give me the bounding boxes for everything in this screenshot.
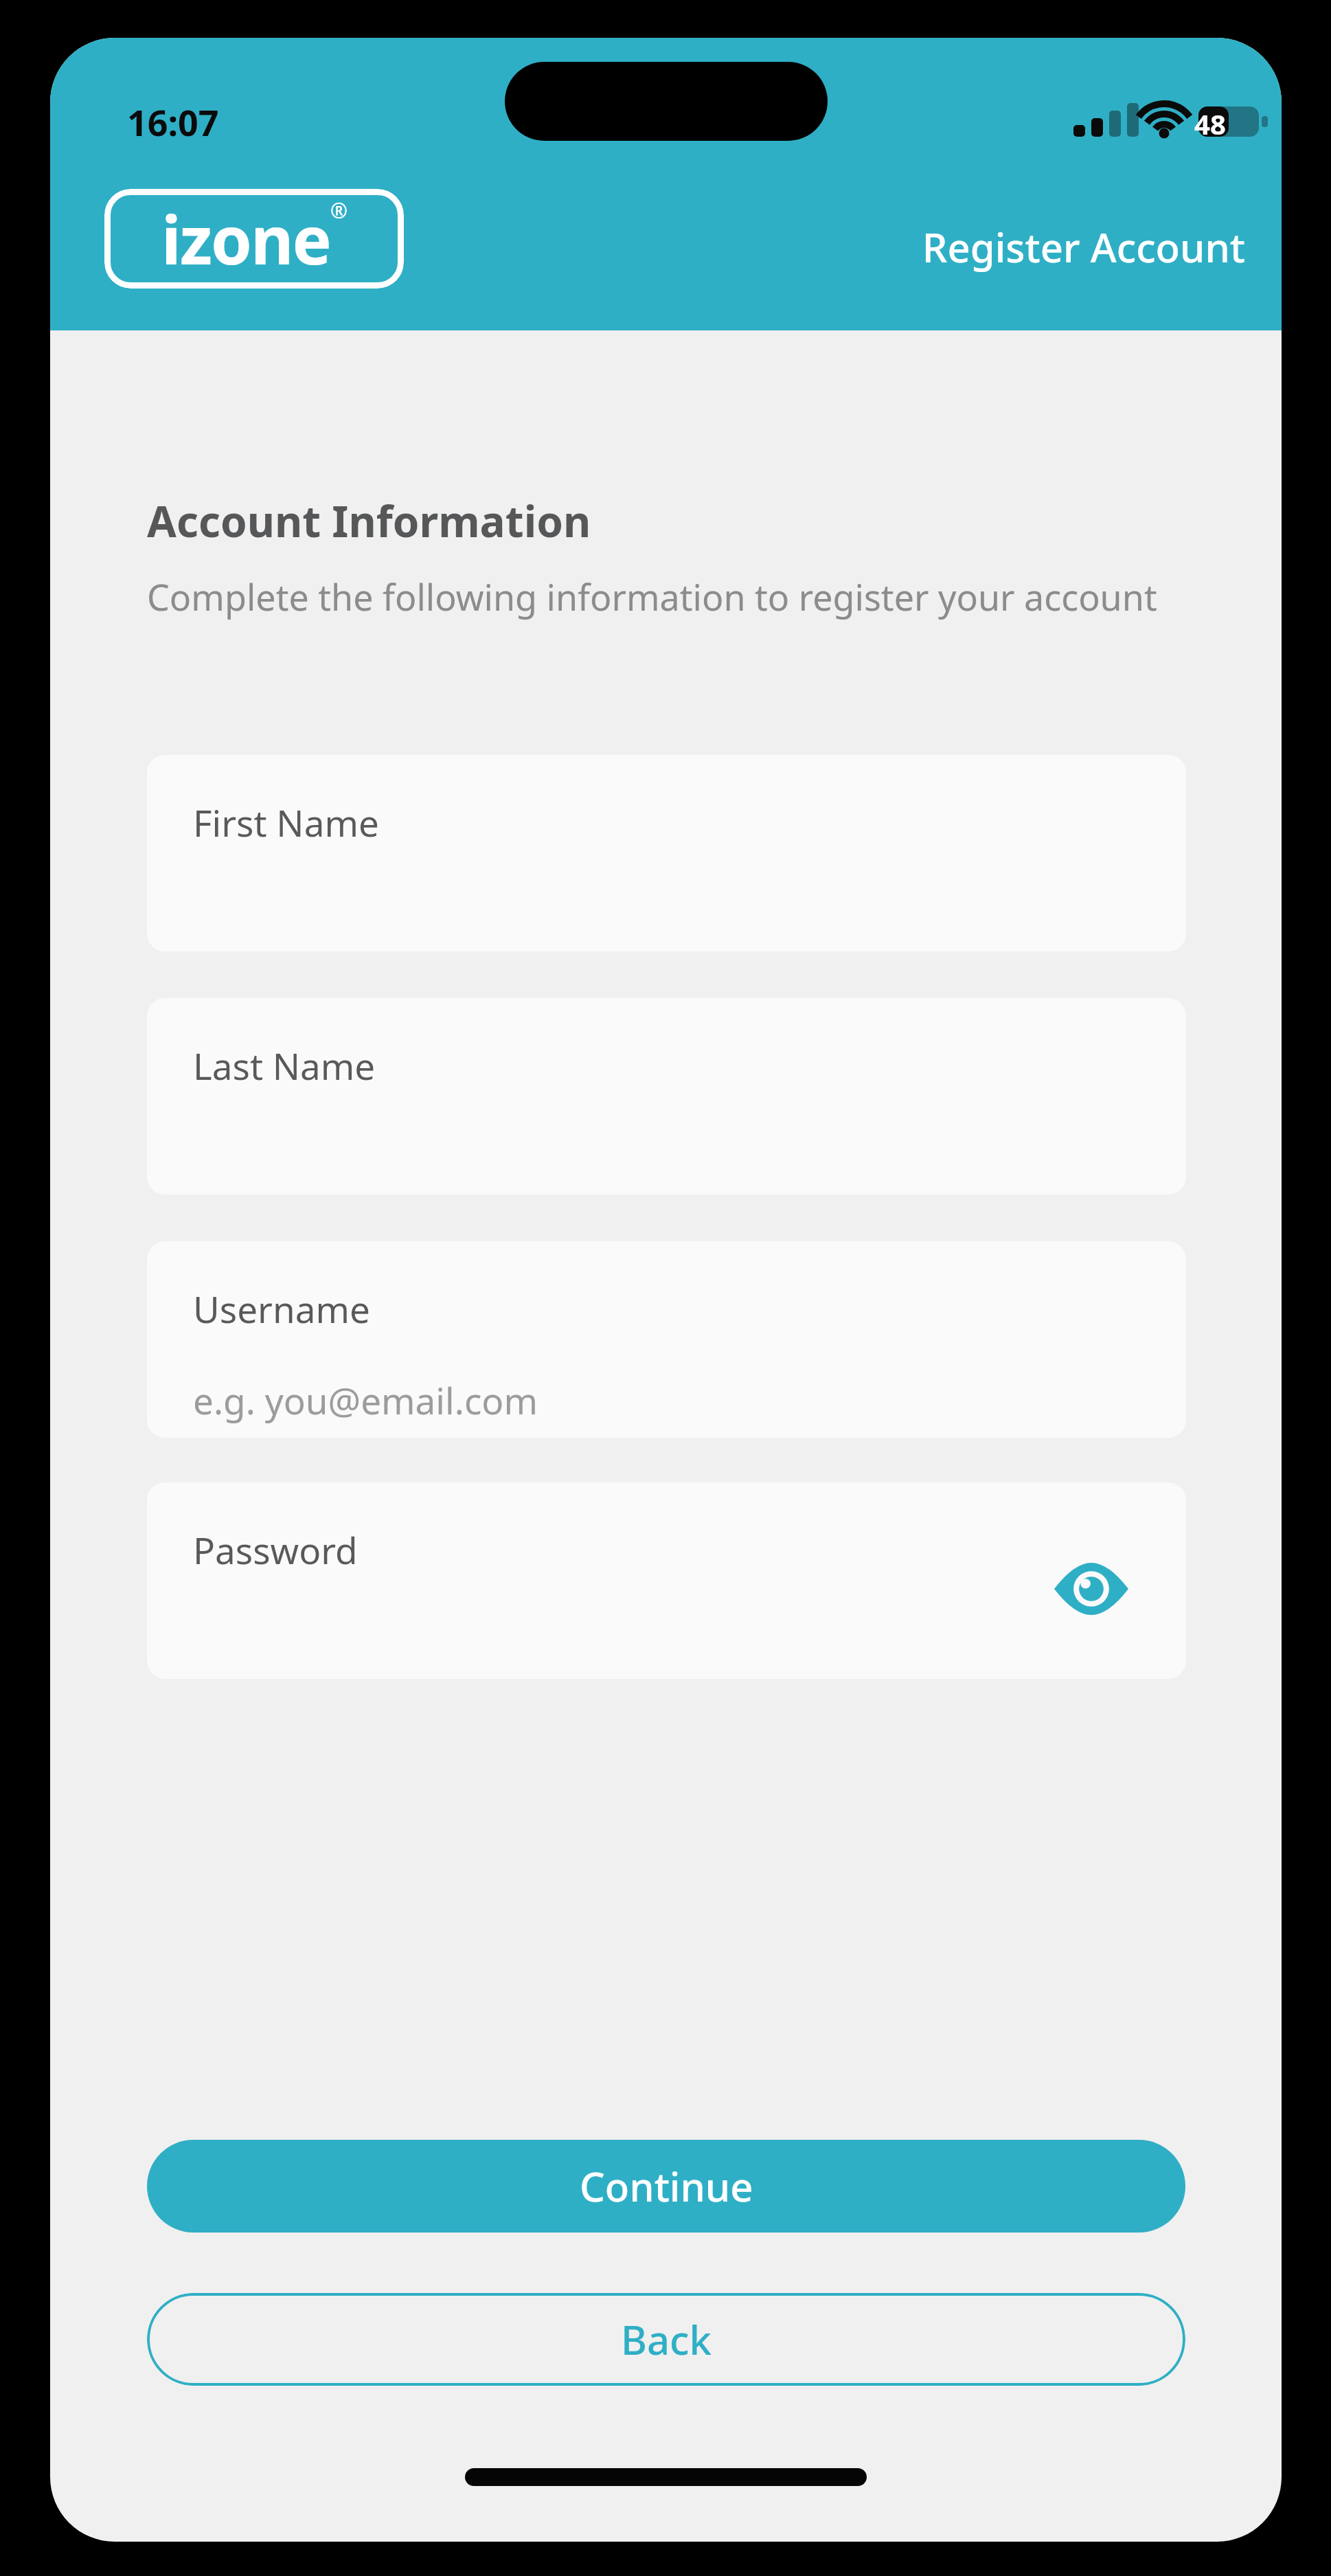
staticText: Continue bbox=[580, 2159, 753, 2213]
button[interactable]: Show password bbox=[1040, 1551, 1143, 1627]
button[interactable]: Username bbox=[147, 1241, 1186, 1438]
button[interactable]: Continue bbox=[147, 2140, 1185, 2233]
staticText: Account Information bbox=[147, 492, 591, 550]
button[interactable]: Last Name bbox=[147, 998, 1186, 1195]
staticText: Back bbox=[621, 2312, 712, 2366]
staticText: izone bbox=[161, 194, 330, 284]
button[interactable]: Register Account bbox=[771, 220, 1245, 274]
staticText: First Name bbox=[193, 798, 379, 847]
button[interactable]: Password bbox=[147, 1482, 1186, 1679]
staticText: 48 bbox=[1194, 105, 1226, 142]
staticText: e.g. you@email.com bbox=[193, 1375, 538, 1425]
staticText: Complete the following information to re… bbox=[147, 572, 1191, 621]
staticText: Password bbox=[193, 1525, 358, 1574]
staticText: ® bbox=[330, 196, 348, 225]
staticText: Username bbox=[193, 1284, 370, 1333]
button[interactable]: First Name bbox=[147, 755, 1186, 951]
button[interactable]: Back bbox=[147, 2293, 1185, 2386]
staticText: Last Name bbox=[193, 1041, 376, 1090]
other: izone logo bbox=[104, 189, 404, 289]
staticText: 16:07 bbox=[127, 98, 219, 146]
